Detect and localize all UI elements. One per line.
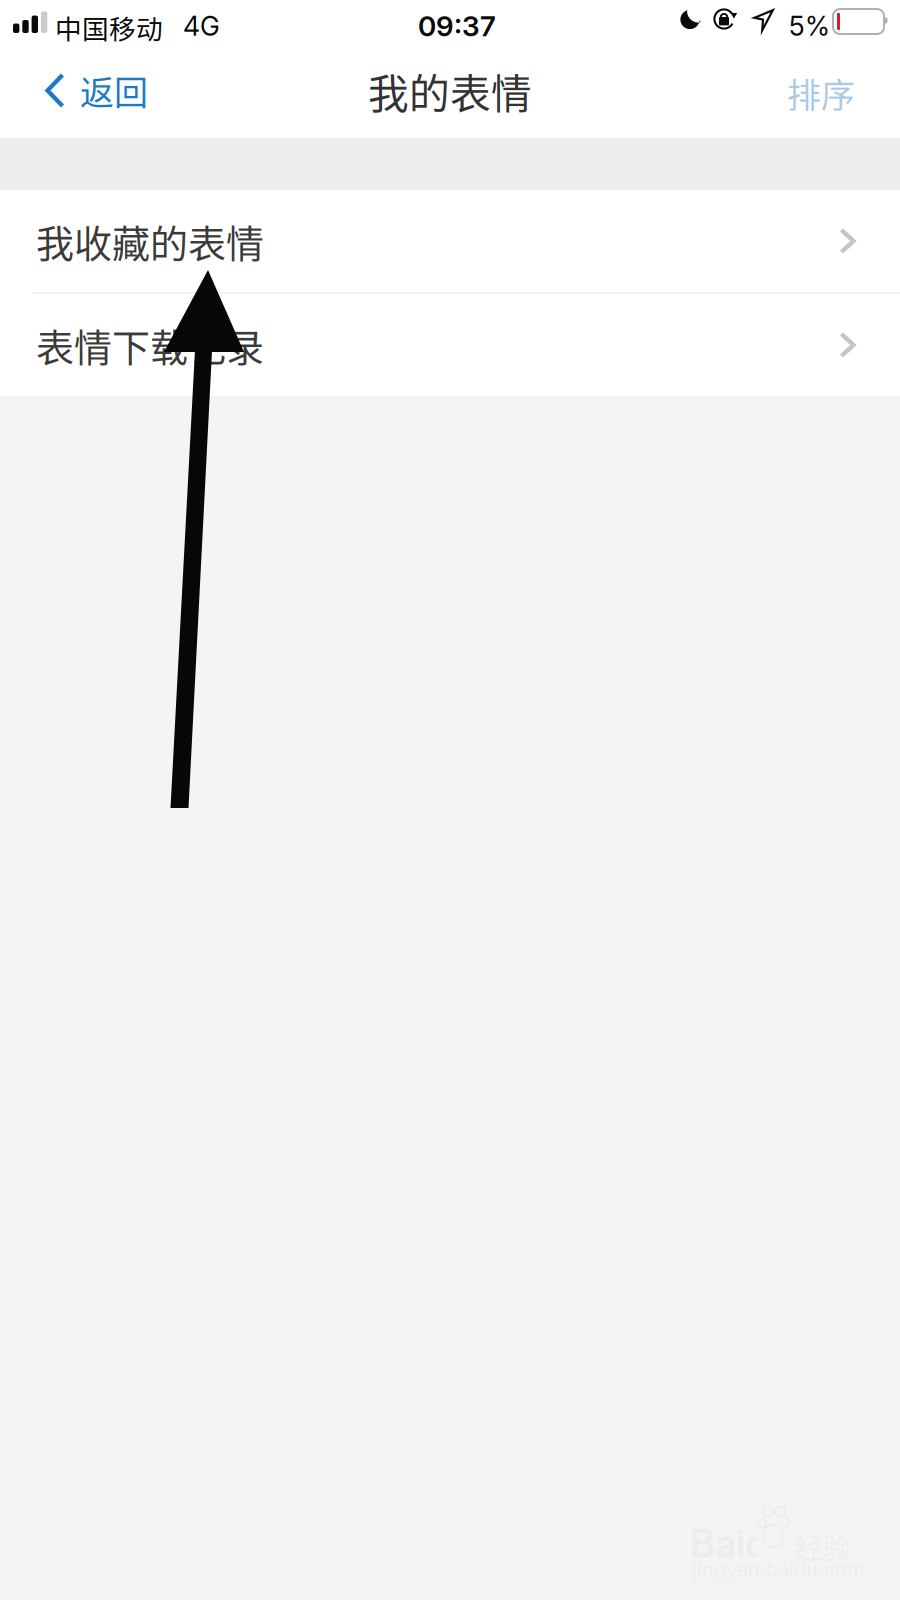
button[interactable]: 返回 xyxy=(0,56,172,132)
staticText: 4G xyxy=(183,10,220,42)
staticText: 5% xyxy=(789,10,830,42)
staticText: 09:37 xyxy=(418,9,496,43)
button[interactable]: 我收藏的表情 xyxy=(0,190,900,292)
staticText: 中国移动 xyxy=(55,8,163,47)
staticText: 我收藏的表情 xyxy=(36,213,264,268)
button[interactable]: 排序 xyxy=(761,56,900,130)
button[interactable]: 表情下载记录 xyxy=(0,294,900,396)
staticText: 排序 xyxy=(787,68,855,118)
staticText: 我的表情 xyxy=(368,62,532,120)
staticText: 返回 xyxy=(80,66,148,115)
staticText: Baidu xyxy=(690,1520,790,1567)
staticText: 表情下载记录 xyxy=(36,317,264,372)
